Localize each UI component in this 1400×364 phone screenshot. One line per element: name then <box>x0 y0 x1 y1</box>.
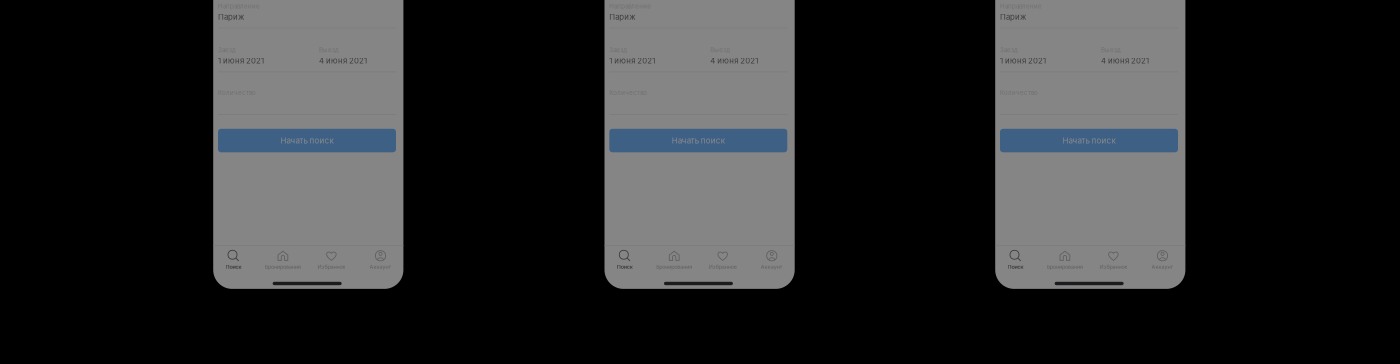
button[interactable]: Бронирования <box>649 250 699 269</box>
staticText: Начать поиск <box>1062 136 1115 145</box>
staticText: Бронирования <box>656 264 692 270</box>
staticText: Аккаунт <box>761 264 783 270</box>
staticText: Избранное <box>709 264 737 270</box>
staticText: Заезд <box>218 46 236 54</box>
staticText: 4 июня 2021 <box>319 56 367 65</box>
staticText: Направление <box>218 2 260 10</box>
button[interactable]: Поиск <box>209 250 258 269</box>
staticText: Выезд <box>319 46 339 54</box>
staticText: Поиск <box>617 264 633 270</box>
staticText: Количество <box>609 89 647 96</box>
button[interactable]: Начать поиск <box>609 129 787 152</box>
staticText: 4 июня 2021 <box>710 56 758 65</box>
button[interactable]: Бронирования <box>1040 250 1090 269</box>
button[interactable]: Избранное <box>307 250 356 269</box>
staticText: 1 июня 2021 <box>1000 56 1046 65</box>
staticText: Париж <box>1000 12 1026 22</box>
staticText: Избранное <box>317 264 345 270</box>
staticText: 1 июня 2021 <box>609 56 655 65</box>
staticText: Париж <box>218 12 244 22</box>
staticText: Начать поиск <box>672 136 725 145</box>
staticText: Выезд <box>710 46 730 54</box>
staticText: Количество <box>1000 89 1038 96</box>
button[interactable]: Поиск <box>991 250 1040 269</box>
button[interactable]: Избранное <box>698 250 747 269</box>
staticText: Выезд <box>1101 46 1121 54</box>
staticText: Бронирования <box>265 264 301 270</box>
button[interactable]: Поиск <box>600 250 649 269</box>
staticText: 4 июня 2021 <box>1101 56 1149 65</box>
staticText: Аккаунт <box>1151 264 1173 270</box>
staticText: Направление <box>609 2 651 10</box>
staticText: Начать поиск <box>280 136 333 145</box>
button[interactable]: Начать поиск <box>1000 129 1178 152</box>
button[interactable]: Бронирования <box>258 250 308 269</box>
button[interactable]: Аккаунт <box>356 250 405 269</box>
button[interactable]: Начать поиск <box>218 129 396 152</box>
button[interactable]: Аккаунт <box>1138 250 1187 269</box>
staticText: Бронирования <box>1047 264 1083 270</box>
staticText: Избранное <box>1099 264 1127 270</box>
staticText: Заезд <box>609 46 627 54</box>
button[interactable]: Избранное <box>1089 250 1138 269</box>
staticText: Поиск <box>225 264 241 270</box>
staticText: Количество <box>218 89 256 96</box>
staticText: Париж <box>609 12 635 22</box>
staticText: Поиск <box>1007 264 1023 270</box>
staticText: Заезд <box>1000 46 1018 54</box>
staticText: 1 июня 2021 <box>218 56 264 65</box>
button[interactable]: Аккаунт <box>747 250 796 269</box>
staticText: Аккаунт <box>369 264 391 270</box>
staticText: Направление <box>1000 2 1042 10</box>
